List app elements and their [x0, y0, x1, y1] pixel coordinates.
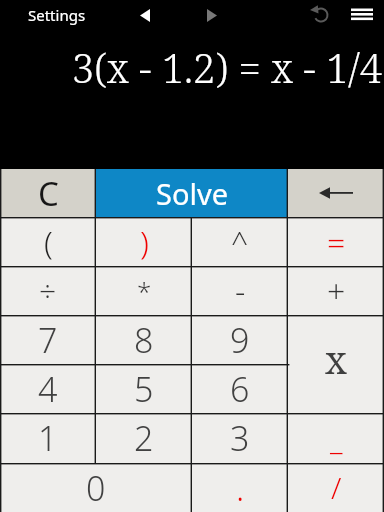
- button[interactable]: 3: [192, 413, 288, 462]
- staticText: 2: [134, 415, 154, 461]
- button[interactable]: Settings: [0, 5, 86, 25]
- staticText: ÷: [39, 270, 57, 311]
- button[interactable]: 5: [96, 364, 192, 413]
- button[interactable]: C: [0, 169, 96, 217]
- button[interactable]: (: [0, 217, 96, 266]
- staticText: C: [38, 171, 59, 216]
- staticText: 4: [38, 366, 58, 412]
- staticText: Solve: [156, 174, 229, 213]
- button[interactable]: 9: [192, 315, 288, 364]
- staticText: Settings: [28, 5, 86, 25]
- button[interactable]: =: [288, 217, 384, 266]
- button[interactable]: ): [96, 217, 192, 266]
- staticText: _: [330, 418, 343, 459]
- staticText: (: [44, 220, 53, 264]
- button[interactable]: 2: [96, 413, 192, 462]
- staticText: 3(x - 1.2) = x - 1/4: [72, 40, 383, 94]
- staticText: *: [137, 273, 152, 308]
- button[interactable]: _: [288, 413, 384, 463]
- button[interactable]: 1: [0, 413, 96, 462]
- button[interactable]: 8: [96, 315, 192, 364]
- button[interactable]: [307, 1, 335, 29]
- staticText: 5: [134, 366, 154, 412]
- staticText: 6: [230, 366, 250, 412]
- staticText: ^: [231, 221, 249, 262]
- staticText: -: [235, 269, 246, 313]
- button[interactable]: [199, 2, 225, 28]
- button[interactable]: +: [288, 266, 384, 315]
- button[interactable]: 6: [192, 364, 288, 413]
- staticText: ): [140, 220, 149, 264]
- staticText: /: [331, 467, 342, 508]
- button[interactable]: -: [192, 266, 288, 315]
- button[interactable]: [345, 1, 379, 29]
- button[interactable]: x: [288, 315, 384, 413]
- button[interactable]: ^: [192, 217, 288, 266]
- staticText: 0: [86, 465, 106, 511]
- staticText: x: [325, 333, 347, 385]
- button[interactable]: ÷: [0, 266, 96, 315]
- button[interactable]: [288, 169, 384, 217]
- button[interactable]: .: [192, 463, 288, 512]
- button[interactable]: Solve: [96, 169, 288, 217]
- staticText: 9: [230, 317, 250, 363]
- button[interactable]: 0: [0, 463, 192, 512]
- staticText: 8: [134, 317, 154, 363]
- button[interactable]: *: [96, 266, 192, 315]
- staticText: 1: [38, 415, 58, 461]
- button[interactable]: [132, 2, 158, 28]
- staticText: .: [236, 465, 245, 511]
- button[interactable]: 7: [0, 315, 96, 364]
- staticText: =: [327, 220, 346, 264]
- staticText: 7: [38, 317, 58, 363]
- button[interactable]: /: [288, 463, 384, 512]
- button[interactable]: 4: [0, 364, 96, 413]
- staticText: 3: [230, 415, 250, 461]
- staticText: +: [327, 269, 346, 313]
